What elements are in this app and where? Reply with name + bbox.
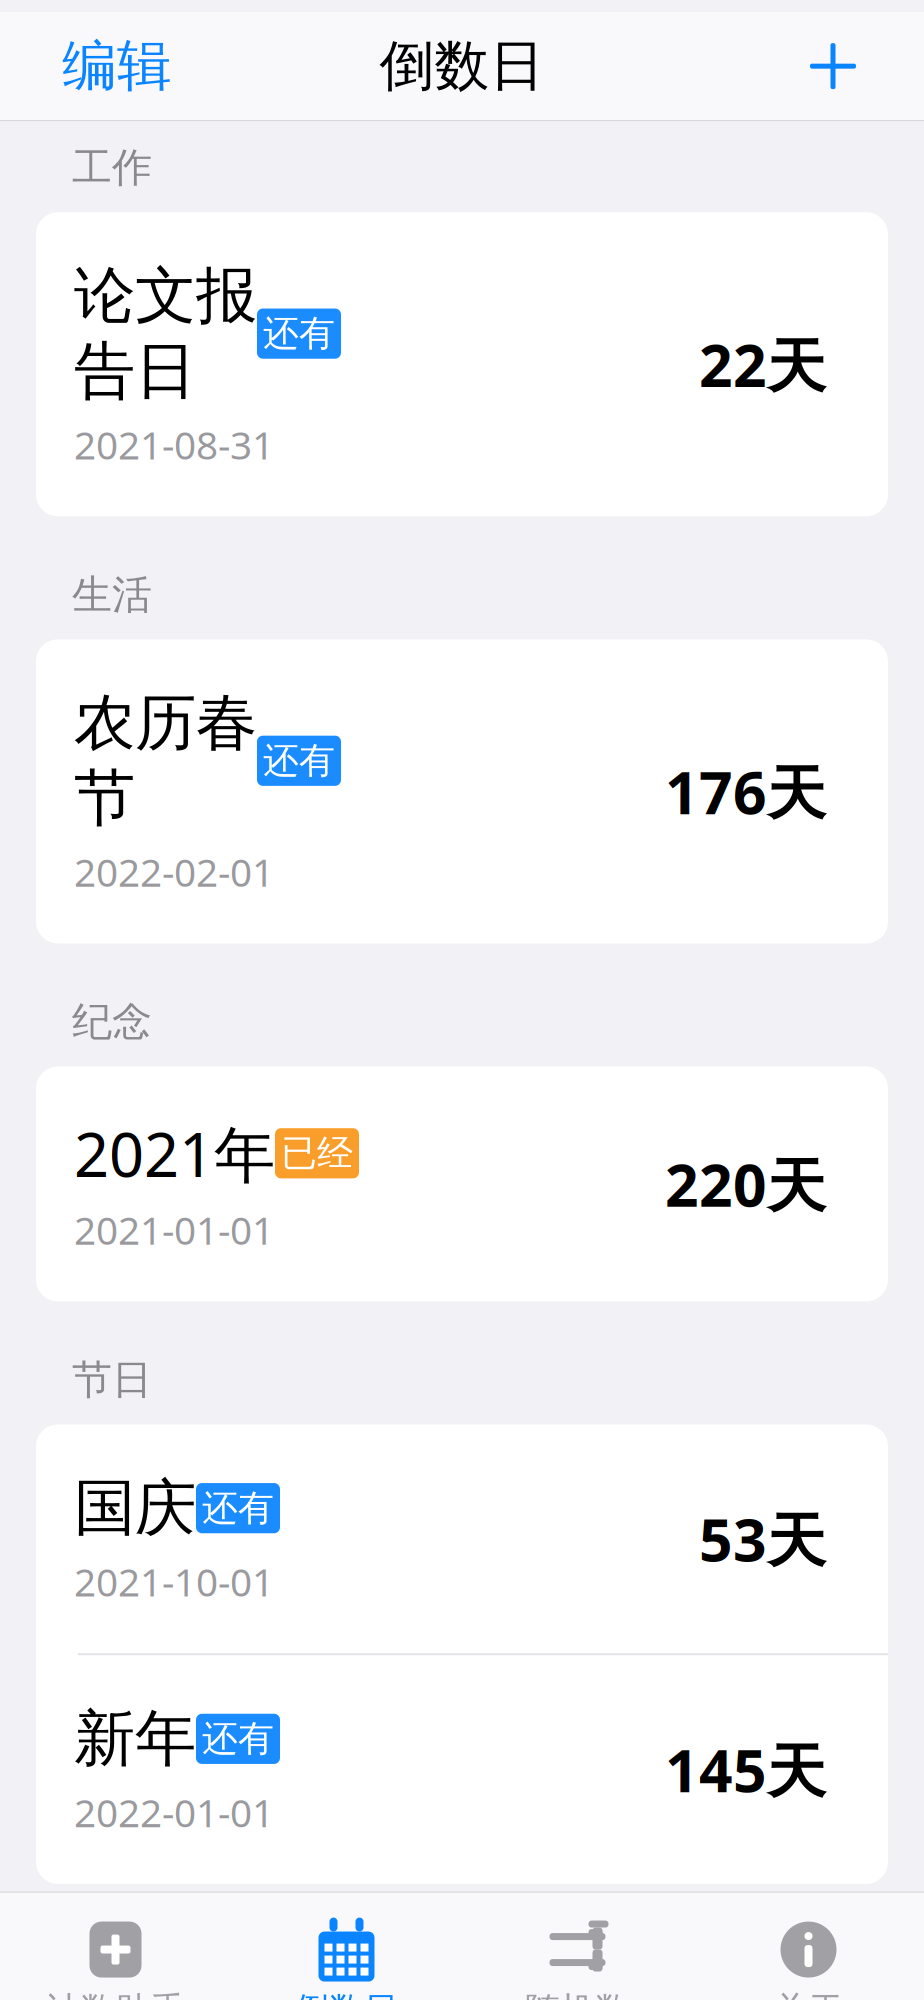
staticText: 已经 [281, 1131, 353, 1175]
staticText: 倒数日 [379, 33, 544, 100]
staticText: 53天 [699, 1500, 826, 1578]
staticText: 2021-01-01 [74, 1204, 274, 1255]
staticText: 倒数日 [294, 1989, 399, 2000]
staticText: 关于 [773, 1989, 843, 2000]
staticText: 145天 [665, 1731, 826, 1808]
button[interactable]: 关于 [693, 1915, 924, 2000]
staticText: 176天 [665, 752, 826, 830]
button[interactable]: 农历春节 [36, 639, 888, 943]
staticText: 2022-02-01 [74, 846, 274, 897]
staticText: 论文报告日 [74, 258, 257, 409]
staticText: 还有 [263, 739, 335, 783]
staticText: 2022-01-01 [74, 1786, 274, 1838]
button[interactable]: 论文报告日 [36, 212, 888, 516]
staticText: 新年 [74, 1701, 196, 1776]
button[interactable]: 倒数日 [231, 1915, 462, 2000]
button[interactable]: 编辑 [52, 21, 182, 112]
button[interactable]: 添加 [798, 29, 868, 103]
staticText: 生活 [72, 570, 152, 619]
staticText: 随机数 [525, 1989, 630, 2000]
button[interactable]: 新年 [36, 1655, 888, 1884]
staticText: 还有 [202, 1717, 274, 1761]
staticText: 还有 [202, 1486, 274, 1530]
button[interactable]: 计数助手 [0, 1915, 231, 2000]
button[interactable]: 国庆 [36, 1424, 888, 1653]
staticText: 22天 [699, 325, 826, 403]
staticText: 2021年 [74, 1113, 275, 1194]
staticText: 220天 [665, 1145, 826, 1223]
staticText: 国庆 [74, 1470, 196, 1546]
staticText: 编辑 [62, 33, 172, 100]
staticText: 纪念 [72, 997, 152, 1046]
staticText: 农历春节 [74, 685, 257, 836]
staticText: 还有 [263, 311, 335, 356]
staticText: 计数助手 [45, 1989, 185, 2000]
staticText: 工作 [72, 143, 152, 192]
button[interactable]: 随机数 [462, 1915, 693, 2000]
staticText: 2021-08-31 [74, 419, 274, 470]
button[interactable]: 2021年 [36, 1067, 888, 1301]
staticText: 2021-10-01 [74, 1556, 274, 1607]
staticText: 节日 [72, 1355, 152, 1404]
